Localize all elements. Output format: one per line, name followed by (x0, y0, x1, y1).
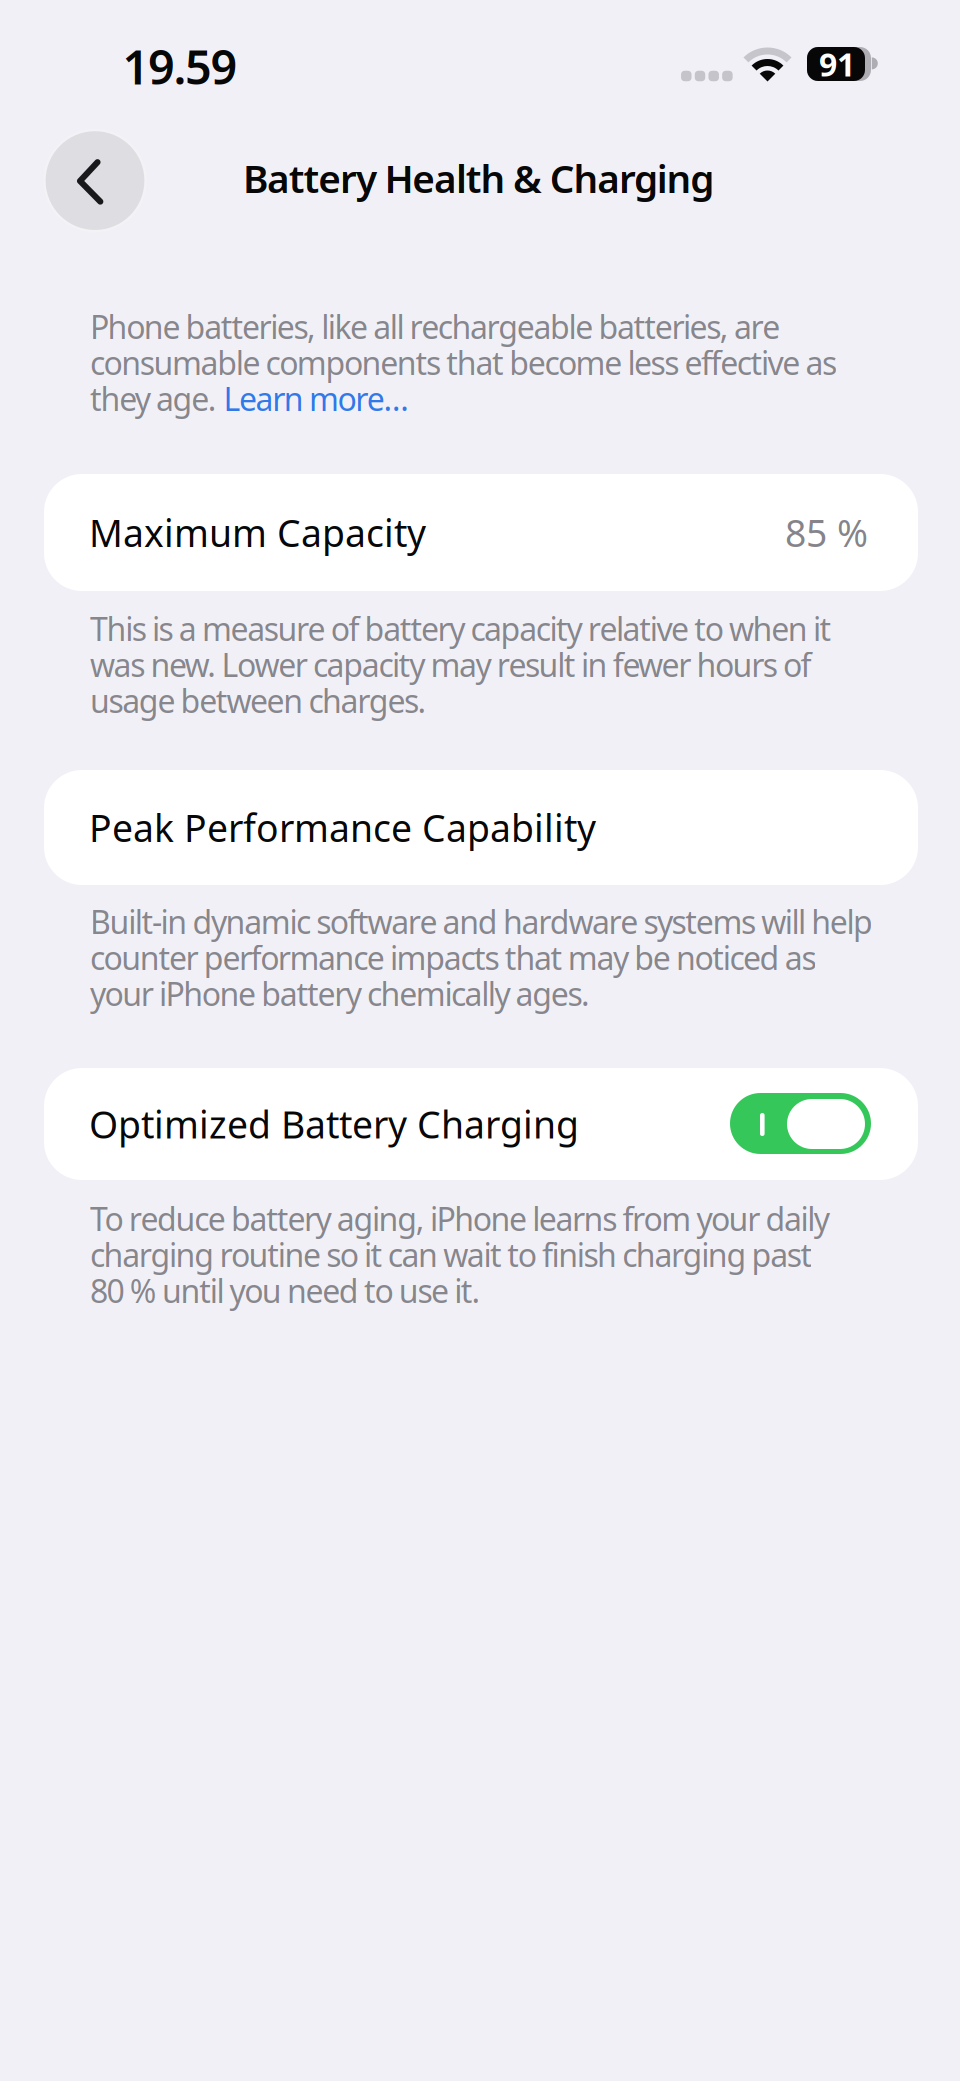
staticText: 85 % (785, 508, 868, 557)
staticText: Battery Health & Charging (243, 152, 714, 204)
staticText: Learn more… (223, 377, 408, 420)
staticText: Optimized Battery Charging (89, 1099, 579, 1149)
button[interactable]: Peak Performance Capability (44, 770, 918, 885)
staticText: To reduce battery aging, iPhone learns f… (90, 1197, 830, 1240)
staticText: This is a measure of battery capacity re… (90, 607, 832, 650)
staticText: counter performance impacts that may be … (90, 936, 816, 979)
button[interactable]: Optimized Battery Charging (730, 1093, 871, 1154)
staticText: they age. (90, 377, 223, 420)
staticText: charging routine so it can wait to finis… (90, 1233, 812, 1276)
staticText: consumable components that become less e… (90, 341, 837, 384)
staticText: Built-in dynamic software and hardware s… (90, 900, 873, 943)
staticText: 19.59 (122, 35, 237, 97)
button[interactable]: Back (43, 129, 147, 232)
staticText: was new. Lower capacity may result in fe… (90, 643, 812, 686)
staticText: Peak Performance Capability (89, 803, 596, 852)
staticText: 91 (819, 43, 855, 85)
staticText: Phone batteries, like all rechargeable b… (90, 305, 780, 348)
staticText: 80 % until you need to use it. (90, 1269, 480, 1312)
staticText: Maximum Capacity (89, 508, 426, 557)
staticText: usage between charges. (90, 679, 427, 722)
staticText: your iPhone battery chemically ages. (90, 972, 590, 1015)
button[interactable]: Learn more… (223, 377, 408, 420)
